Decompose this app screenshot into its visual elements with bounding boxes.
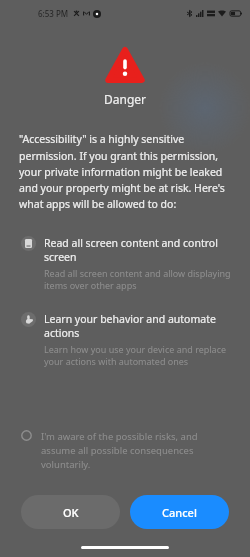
staticText: Learn your behavior and automate actions [44, 312, 232, 340]
staticText: Danger [0, 91, 250, 107]
button[interactable]: Automate actions [0, 309, 250, 371]
button[interactable]: I'm aware of the possible risks, and ass… [0, 424, 250, 477]
button[interactable]: OK [21, 495, 120, 529]
staticText: Read all screen content and control scre… [44, 236, 232, 264]
staticText: 6:53 PM [38, 8, 69, 19]
other: Read screen content [21, 236, 36, 251]
staticText: Learn how you use your device and replac… [44, 343, 232, 368]
staticText: Cancel [162, 505, 197, 520]
other: Automate actions [21, 312, 36, 327]
staticText: "Accessibility" is a highly sensitive pe… [19, 132, 231, 211]
staticText: I'm aware of the possible risks, and ass… [41, 430, 232, 471]
staticText: OK [63, 505, 79, 520]
button[interactable]: Read screen content [0, 233, 250, 295]
button[interactable]: Cancel [130, 495, 229, 529]
staticText: Read all screen content and allow displa… [44, 267, 232, 292]
